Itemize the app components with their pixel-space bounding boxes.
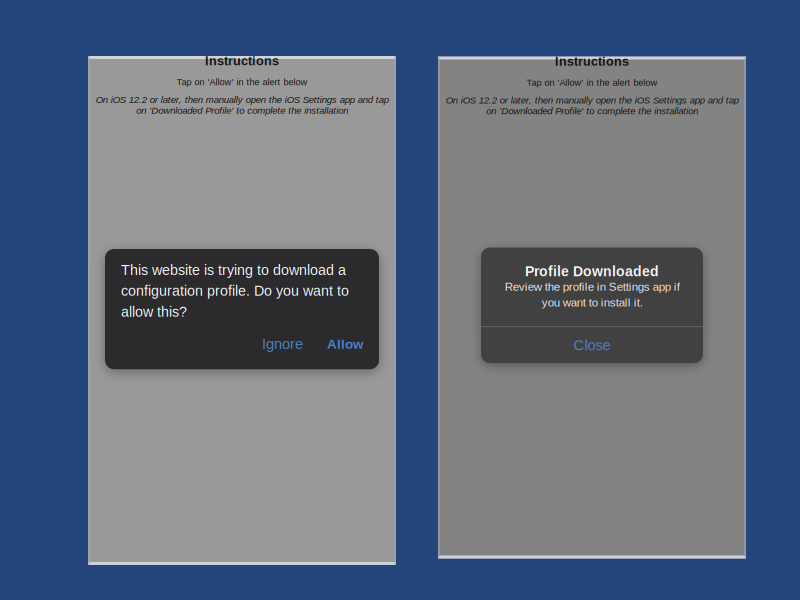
staticText: On iOS 12.2 or later, then manually open… — [95, 94, 388, 116]
staticText: On iOS 12.2 or later, then manually open… — [445, 95, 738, 116]
staticText: Ignore — [262, 336, 303, 352]
staticText: Tap on 'Allow' in the alert below — [176, 77, 307, 87]
staticText: Allow — [327, 337, 363, 351]
staticText: This website is trying to download a con… — [121, 262, 349, 320]
staticText: Review the profile in Settings app if yo… — [504, 280, 679, 309]
staticText: Tap on 'Allow' in the alert below — [526, 77, 657, 88]
button[interactable]: Close — [481, 327, 703, 363]
staticText: Close — [573, 337, 610, 353]
staticText: Instructions — [555, 54, 629, 68]
button[interactable]: Ignore — [262, 333, 303, 355]
button[interactable]: Allow — [303, 334, 363, 354]
staticText: Instructions — [205, 54, 279, 68]
staticText: Profile Downloaded — [525, 263, 659, 279]
